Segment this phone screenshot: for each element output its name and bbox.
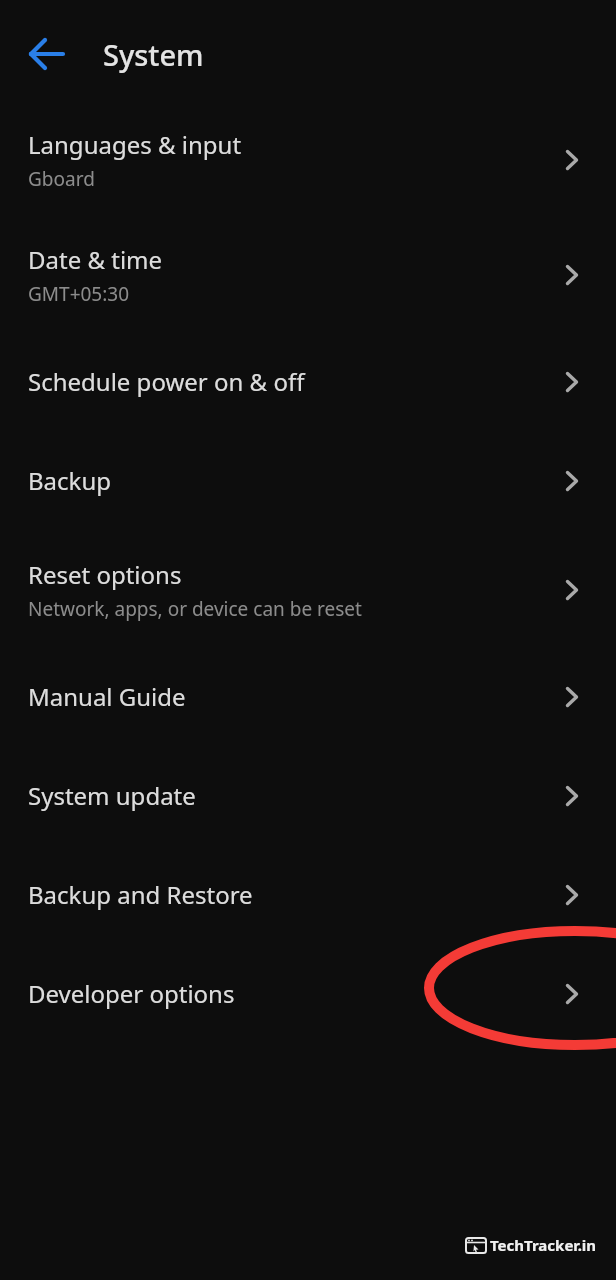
staticText: Date & time (28, 243, 163, 276)
staticText: Gboard (28, 166, 95, 192)
staticText: System update (28, 779, 196, 812)
button[interactable] (23, 30, 71, 78)
staticText: Backup (28, 464, 111, 497)
button[interactable]: System update (0, 746, 616, 845)
staticText: Reset options (28, 558, 182, 591)
button[interactable]: Languages & input (0, 102, 616, 218)
staticText: Manual Guide (28, 680, 186, 713)
button[interactable]: Backup (0, 431, 616, 530)
button[interactable]: Manual Guide (0, 647, 616, 746)
staticText: Languages & input (28, 128, 242, 161)
button[interactable]: Reset options (0, 532, 616, 648)
staticText: TechTracker.in (490, 1235, 597, 1255)
staticText: Network, apps, or device can be reset (28, 596, 362, 622)
staticText: GMT+05:30 (28, 281, 130, 307)
button[interactable]: Date & time (0, 217, 616, 333)
button[interactable]: Developer options (0, 944, 616, 1043)
staticText: Developer options (28, 977, 235, 1010)
button[interactable]: Schedule power on & off (0, 332, 616, 431)
staticText: Backup and Restore (28, 878, 253, 911)
button[interactable]: Backup and Restore (0, 845, 616, 944)
staticText: Schedule power on & off (28, 365, 305, 398)
staticText: System (103, 35, 204, 74)
